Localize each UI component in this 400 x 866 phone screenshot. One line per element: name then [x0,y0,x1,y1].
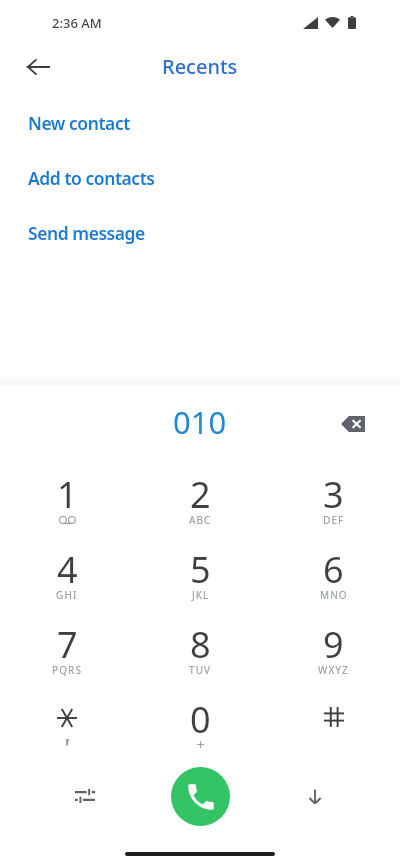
button[interactable]: 8 [134,616,267,691]
staticText: 1 [57,470,78,519]
staticText: 010 [173,401,227,443]
staticText: New contact [28,111,130,135]
button[interactable]: 5 [134,541,267,616]
staticText: 2 [190,470,211,519]
button[interactable]: 2 [134,466,267,541]
button[interactable]: Hide dialpad [293,774,337,818]
staticText: 2:36 AM [52,14,102,32]
staticText: Add to contacts [28,166,155,190]
button[interactable]: Backspace [331,402,375,446]
staticText: Recents [162,53,238,80]
staticText: 0 [190,695,211,744]
staticText: TUV [189,663,212,677]
staticText: WXYZ [318,663,349,677]
staticText: Send message [28,221,145,245]
button[interactable]: Back [18,47,58,87]
button[interactable] [267,691,400,766]
button[interactable] [0,691,134,766]
button[interactable]: 3 [267,466,400,541]
staticText: DEF [323,513,345,527]
staticText: 3 [323,470,344,519]
button[interactable]: Call [171,767,230,826]
staticText: 7 [57,620,78,669]
staticText: 9 [323,620,344,669]
staticText: 6 [323,545,344,594]
staticText: PQRS [52,663,82,677]
button[interactable]: New contact [0,95,400,150]
button[interactable]: Send message [0,205,400,260]
button[interactable]: 0 [134,691,267,766]
staticText: 5 [190,545,211,594]
staticText: ABC [189,513,212,527]
button[interactable]: 9 [267,616,400,691]
button[interactable]: 4 [0,541,134,616]
button[interactable]: 6 [267,541,400,616]
staticText: 4 [57,545,78,594]
staticText: MNO [320,588,348,602]
button[interactable]: 1 [0,466,134,541]
staticText: 8 [190,620,211,669]
button[interactable]: Dialpad options [63,774,107,818]
button[interactable]: 7 [0,616,134,691]
staticText: GHI [56,588,78,602]
button[interactable]: Add to contacts [0,150,400,205]
staticText: JKL [192,588,210,602]
